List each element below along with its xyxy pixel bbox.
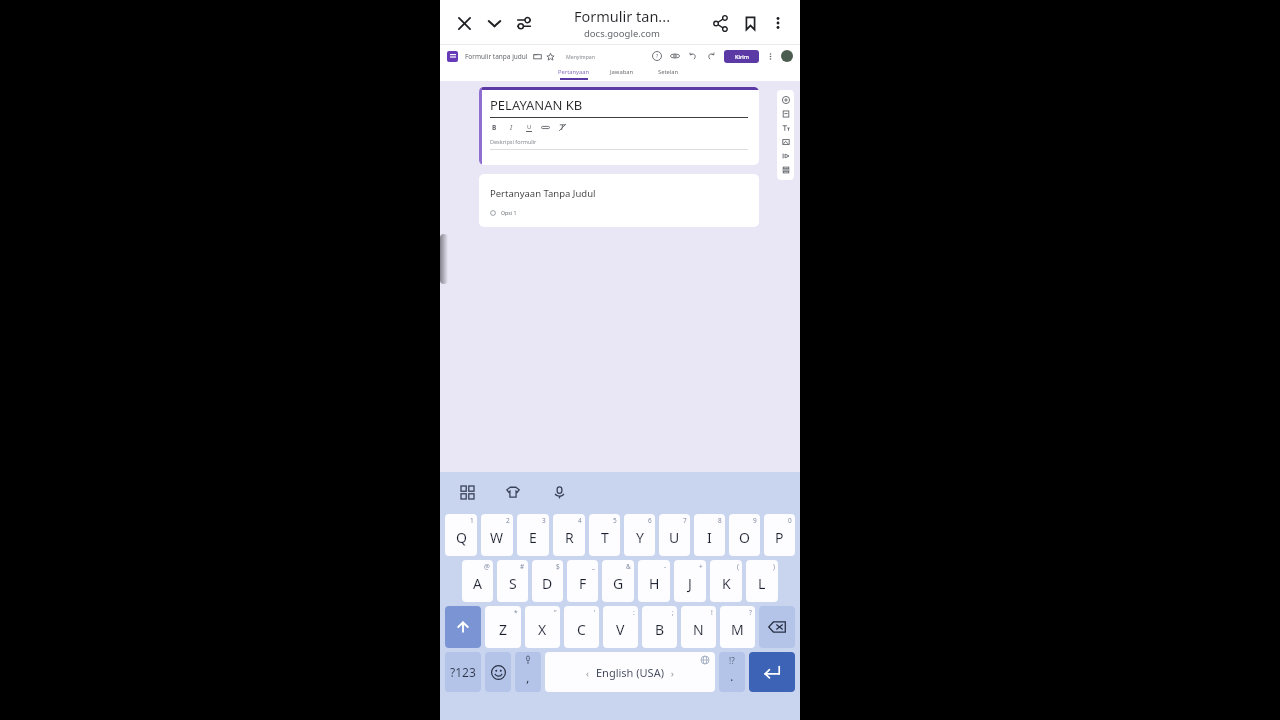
staticText: K	[722, 574, 731, 593]
button[interactable]: Bookmark	[735, 8, 765, 38]
button[interactable]: B	[490, 123, 499, 132]
staticText: )	[773, 562, 775, 571]
staticText: ‹	[586, 667, 589, 679]
staticText: PELAYANAN KB	[490, 96, 583, 114]
button[interactable]: Backspace	[759, 606, 795, 648]
button[interactable]: More settings	[766, 52, 775, 61]
staticText: &	[626, 562, 631, 571]
staticText: Pertanyaan Tanpa Judul	[490, 187, 596, 200]
button[interactable]: Import questions	[779, 107, 793, 121]
button[interactable]: PELAYANAN KB	[479, 87, 759, 165]
button[interactable]: #	[497, 560, 528, 602]
button[interactable]: 3	[517, 514, 549, 556]
button[interactable]: Emoji	[485, 652, 511, 692]
button[interactable]: Voice input	[545, 478, 573, 506]
button[interactable]: ;	[642, 606, 677, 648]
button[interactable]: '	[564, 606, 599, 648]
button[interactable]: 8	[694, 514, 725, 556]
button[interactable]: Kirim	[724, 50, 759, 63]
button[interactable]: I	[507, 123, 516, 132]
button[interactable]: Underline	[524, 123, 533, 132]
button[interactable]: Share	[705, 8, 735, 38]
staticText: ›	[671, 667, 674, 679]
button[interactable]: $	[532, 560, 563, 602]
staticText: '	[594, 608, 596, 617]
button[interactable]: Add section	[779, 163, 793, 177]
button[interactable]: 6	[624, 514, 655, 556]
button[interactable]: @	[462, 560, 493, 602]
staticText: Deskripsi formulir	[490, 138, 537, 145]
button[interactable]: -	[638, 560, 670, 602]
button[interactable]: Shift	[445, 606, 481, 648]
staticText: Z	[499, 620, 508, 639]
button[interactable]: Apps	[453, 478, 481, 506]
staticText: O	[739, 528, 750, 547]
button[interactable]: Jawaban	[606, 68, 638, 80]
staticText: S	[509, 574, 517, 593]
button[interactable]: *	[485, 606, 521, 648]
button[interactable]: Help	[652, 51, 662, 61]
button[interactable]: 9	[729, 514, 760, 556]
button[interactable]: Preview	[670, 51, 680, 61]
button[interactable]: Page info	[509, 8, 539, 38]
button[interactable]: 4	[553, 514, 585, 556]
button[interactable]: Symbols	[445, 652, 481, 692]
button[interactable]: Account	[781, 50, 793, 62]
staticText: F	[579, 574, 587, 593]
button[interactable]: Close	[449, 8, 479, 38]
button[interactable]: 0	[764, 514, 795, 556]
staticText: B	[492, 123, 497, 132]
staticText: @	[484, 562, 490, 571]
button[interactable]: Pertanyaan	[556, 68, 592, 80]
button[interactable]: 7	[659, 514, 690, 556]
button[interactable]: :	[603, 606, 638, 648]
button[interactable]: 2	[481, 514, 513, 556]
staticText: !	[711, 608, 713, 617]
button[interactable]: Clear formatting	[558, 123, 567, 132]
button[interactable]: Setelan	[652, 68, 684, 80]
button[interactable]: Redo	[706, 51, 716, 61]
button[interactable]: Period	[719, 652, 745, 692]
button[interactable]: Enter	[749, 652, 795, 692]
staticText: C	[577, 620, 586, 639]
staticText: T	[601, 528, 609, 547]
button[interactable]: Comma	[515, 652, 541, 692]
button[interactable]: (	[710, 560, 742, 602]
button[interactable]: _	[567, 560, 598, 602]
staticText: X	[538, 620, 547, 639]
button[interactable]: "	[525, 606, 560, 648]
button[interactable]: !	[681, 606, 716, 648]
staticText: I	[707, 528, 712, 547]
button[interactable]: ?	[720, 606, 755, 648]
button[interactable]: Add image	[779, 135, 793, 149]
button[interactable]: )	[746, 560, 778, 602]
staticText: Setelan	[658, 68, 679, 76]
button[interactable]: Space	[545, 652, 715, 692]
staticText: 2	[506, 516, 510, 525]
button[interactable]: Star	[546, 52, 555, 61]
staticText: +	[699, 562, 703, 571]
button[interactable]: 5	[589, 514, 620, 556]
button[interactable]: 1	[445, 514, 477, 556]
staticText: :	[633, 608, 635, 617]
button[interactable]: Undo	[688, 51, 698, 61]
button[interactable]: Add question	[779, 93, 793, 107]
button[interactable]: +	[674, 560, 706, 602]
button[interactable]: Move	[533, 52, 542, 61]
staticText: Pertanyaan	[558, 68, 590, 76]
button[interactable]: Stickers	[499, 478, 527, 506]
button[interactable]: Add video	[779, 149, 793, 163]
staticText: L	[758, 574, 766, 593]
staticText: P	[775, 528, 784, 547]
staticText: Q	[456, 528, 467, 547]
button[interactable]: Collapse	[479, 8, 509, 38]
staticText: W	[490, 528, 504, 547]
button[interactable]: Add title and description	[779, 121, 793, 135]
button[interactable]: More options	[765, 10, 791, 36]
button[interactable]: Insert link	[541, 123, 550, 132]
button[interactable]: Pertanyaan Tanpa Judul	[479, 174, 759, 227]
button[interactable]: Google Forms	[447, 51, 458, 62]
staticText: ?123	[450, 664, 476, 680]
button[interactable]: &	[602, 560, 634, 602]
staticText: (	[737, 562, 739, 571]
